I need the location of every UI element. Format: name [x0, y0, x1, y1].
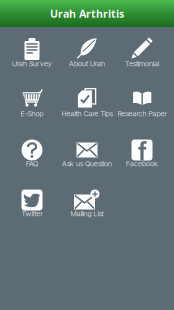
- button[interactable]: Mailing List: [59, 184, 114, 234]
- button[interactable]: About Urah: [59, 34, 114, 84]
- staticText: Urah Arthritis: [50, 6, 124, 21]
- staticText: About Urah: [69, 59, 105, 68]
- staticText: Mailing List: [70, 209, 103, 218]
- staticText: E-Shop: [20, 109, 43, 118]
- button[interactable]: Ask us Question: [59, 134, 114, 184]
- staticText: Twitter: [21, 209, 42, 218]
- staticText: Testimonial: [125, 59, 159, 68]
- button[interactable]: FAQ: [4, 134, 59, 184]
- button[interactable]: Twitter: [4, 184, 59, 234]
- button[interactable]: Research Paper: [114, 84, 169, 134]
- button[interactable]: E-Shop: [4, 84, 59, 134]
- staticText: Ask us Question: [62, 159, 112, 168]
- staticText: Research Paper: [117, 109, 166, 118]
- staticText: FAQ: [26, 159, 38, 168]
- button[interactable]: Facebook: [114, 134, 169, 184]
- button[interactable]: Urah Survey: [4, 34, 59, 84]
- staticText: Health Care Tips: [61, 109, 112, 118]
- staticText: Facebook: [126, 159, 158, 168]
- staticText: Urah Survey: [12, 59, 52, 68]
- button[interactable]: Health Care Tips: [59, 84, 114, 134]
- button[interactable]: Testimonial: [114, 34, 169, 84]
